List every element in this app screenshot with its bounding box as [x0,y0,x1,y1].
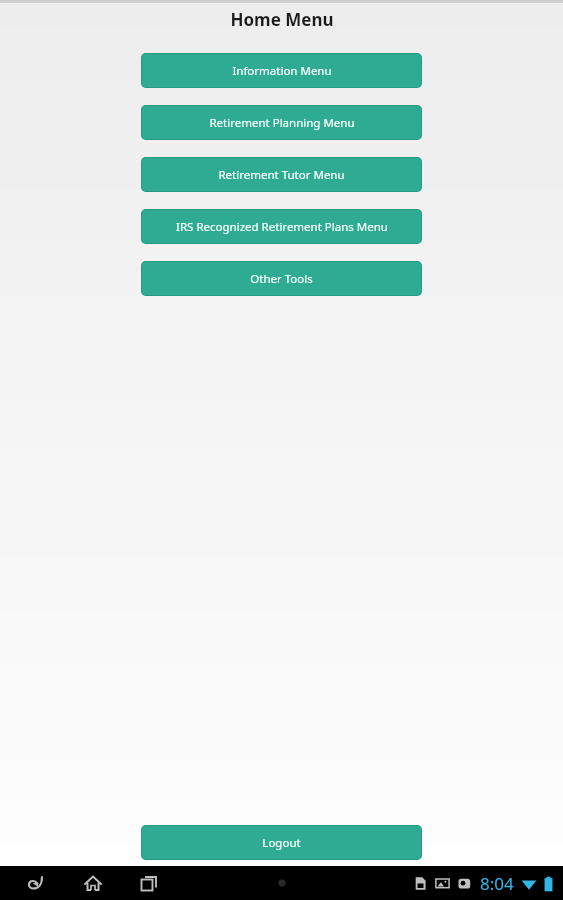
button[interactable]: Logout [141,825,422,860]
button[interactable]: Retirement Tutor Menu [141,157,422,192]
button[interactable]: IRS Recognized Retirement Plans Menu [141,209,422,244]
button[interactable]: Recent apps [126,866,172,900]
button[interactable]: Status bar [413,872,553,895]
staticText: IRS Recognized Retirement Plans Menu [176,219,388,235]
staticText: Retirement Tutor Menu [218,167,345,183]
staticText: Retirement Planning Menu [209,115,355,131]
staticText: Home Menu [230,8,334,31]
staticText: Logout [262,835,301,851]
button[interactable]: Home [70,866,116,900]
button[interactable]: Back [14,866,60,900]
staticText: Other Tools [250,271,313,287]
button[interactable]: Other Tools [141,261,422,296]
staticText: Information Menu [232,63,332,79]
button[interactable]: Retirement Planning Menu [141,105,422,140]
button[interactable]: Information Menu [141,53,422,88]
staticText: 8:04 [480,872,514,895]
